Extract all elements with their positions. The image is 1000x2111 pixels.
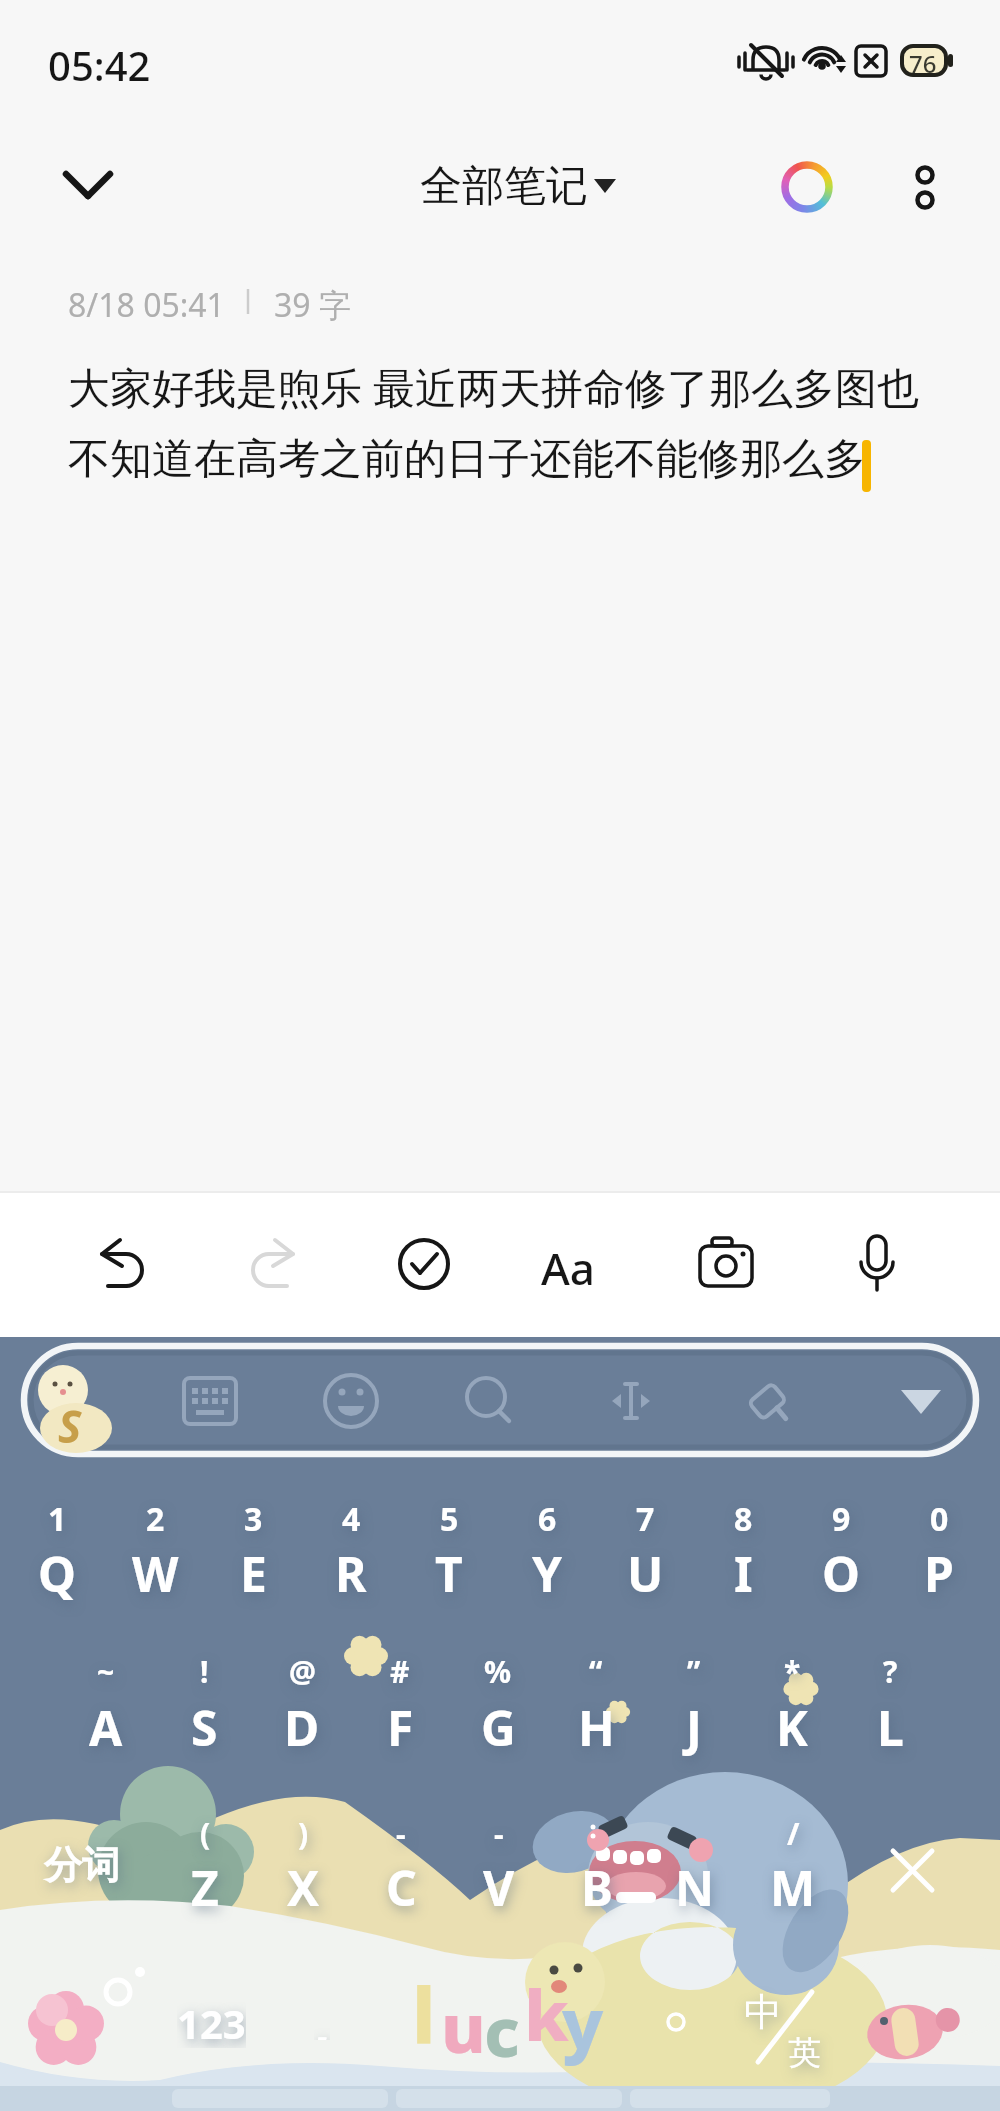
button[interactable] (778, 158, 836, 216)
button[interactable]: R (302, 1540, 400, 1606)
button[interactable] (688, 1226, 764, 1304)
staticText: u (441, 1980, 486, 2073)
button[interactable]: 123 (156, 1996, 266, 2048)
button[interactable]: 全部笔记 (405, 148, 620, 218)
button[interactable] (84, 1226, 160, 1304)
staticText: G (481, 1695, 516, 1760)
staticText: ! (200, 1651, 209, 1692)
button[interactable]: E (204, 1540, 302, 1606)
staticText: S (58, 1396, 82, 1456)
button[interactable]: 2 (106, 1496, 204, 1542)
staticText: y (562, 1974, 604, 2069)
staticText: U (627, 1541, 664, 1606)
button[interactable]: J (645, 1692, 743, 1762)
button[interactable] (537, 1226, 613, 1304)
staticText: * (784, 1651, 801, 1692)
staticText: 6 (538, 1497, 557, 1541)
button[interactable] (839, 1226, 915, 1304)
staticText: 英 (788, 2032, 821, 2074)
button[interactable] (395, 1985, 610, 2080)
button[interactable]: 6 (498, 1496, 596, 1542)
staticText: W (132, 1541, 179, 1606)
staticText: k (524, 1966, 569, 2061)
button[interactable]: Q (8, 1540, 106, 1606)
button[interactable]: 分词 (28, 1838, 136, 1892)
button[interactable] (591, 1360, 671, 1440)
staticText: 0 (930, 1497, 949, 1541)
button[interactable] (645, 1992, 707, 2054)
staticText: ) (298, 1813, 309, 1854)
staticText: T (435, 1541, 463, 1606)
button[interactable]: 5 (400, 1496, 498, 1542)
staticText: B (581, 1855, 613, 1920)
button[interactable]: F (351, 1692, 449, 1762)
staticText: ” (687, 1651, 701, 1692)
staticText: S (191, 1695, 218, 1760)
staticText: I (734, 1541, 753, 1606)
button[interactable]: X (254, 1852, 352, 1922)
button[interactable]: P (890, 1540, 988, 1606)
button[interactable]: G (449, 1692, 547, 1762)
button[interactable]: 9 (792, 1496, 890, 1542)
button[interactable]: 7 (596, 1496, 694, 1542)
button[interactable] (898, 158, 952, 218)
button[interactable]: U (596, 1540, 694, 1606)
staticText: 分词 (44, 1841, 120, 1889)
button[interactable]: Z (156, 1852, 254, 1922)
staticText: 全部笔记 (420, 160, 588, 213)
button[interactable]: L (841, 1692, 939, 1762)
staticText: Q (38, 1541, 76, 1606)
button[interactable] (450, 1360, 530, 1440)
button[interactable]: M (744, 1852, 842, 1922)
staticText: 7 (636, 1497, 655, 1541)
button[interactable]: C (352, 1852, 450, 1922)
staticText: c (484, 1984, 520, 2077)
button[interactable]: 4 (302, 1496, 400, 1542)
button[interactable]: H (547, 1692, 645, 1762)
button[interactable]: O (792, 1540, 890, 1606)
button[interactable]: T (400, 1540, 498, 1606)
staticText: H (578, 1695, 615, 1760)
staticText: ( (200, 1813, 211, 1854)
button[interactable]: B (548, 1852, 646, 1922)
button[interactable]: A (57, 1692, 155, 1762)
button[interactable] (235, 1226, 311, 1304)
button[interactable] (45, 150, 125, 220)
button[interactable]: I (694, 1540, 792, 1606)
button[interactable] (858, 1995, 963, 2070)
button[interactable] (873, 1833, 953, 1909)
button[interactable]: D (253, 1692, 351, 1762)
button[interactable]: Y (498, 1540, 596, 1606)
staticText: 76 (909, 47, 937, 80)
button[interactable] (386, 1226, 462, 1304)
button[interactable]: S (155, 1692, 253, 1762)
button[interactable]: V (450, 1852, 548, 1922)
staticText: 5 (440, 1497, 459, 1541)
button[interactable] (730, 1982, 840, 2077)
button[interactable]: 8 (694, 1496, 792, 1542)
staticText: @ (289, 1651, 316, 1692)
button[interactable] (731, 1360, 811, 1440)
button[interactable] (35, 1360, 115, 1440)
staticText: J (686, 1695, 702, 1760)
staticText: F (387, 1695, 414, 1760)
staticText: ? (883, 1651, 898, 1692)
staticText: “ (589, 1651, 603, 1692)
button[interactable]: N (646, 1852, 744, 1922)
staticText: 8/18 05:41 (68, 283, 225, 327)
staticText: K (776, 1695, 808, 1760)
button[interactable]: 1 (8, 1496, 106, 1542)
button[interactable]: K (743, 1692, 841, 1762)
button[interactable] (311, 1360, 391, 1440)
button[interactable]: W (106, 1540, 204, 1606)
staticText: Z (191, 1855, 219, 1920)
button[interactable] (881, 1360, 961, 1440)
button[interactable]: 3 (204, 1496, 302, 1542)
staticText: D (284, 1695, 320, 1760)
button[interactable] (20, 1985, 120, 2080)
button[interactable] (170, 1360, 250, 1440)
button[interactable]: 0 (890, 1496, 988, 1542)
staticText: ~ (97, 1651, 115, 1692)
